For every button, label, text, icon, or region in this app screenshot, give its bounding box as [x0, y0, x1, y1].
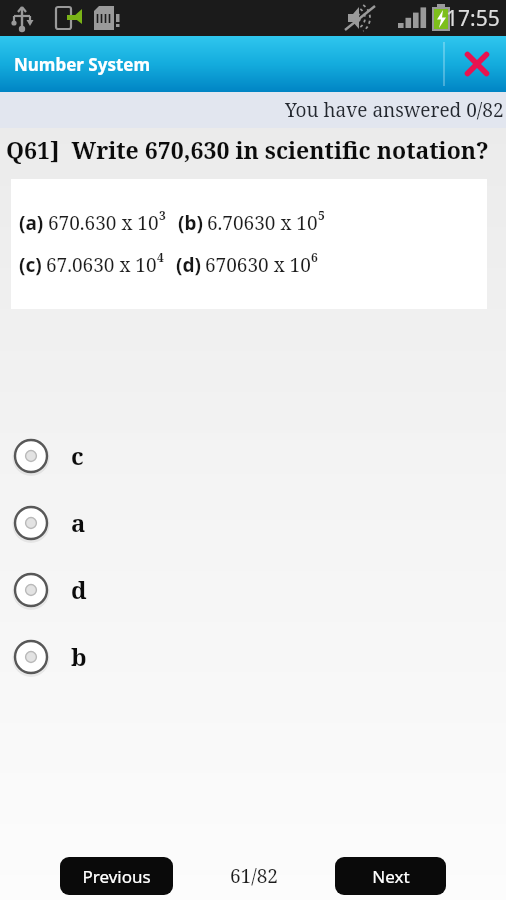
staticText: 61/82	[230, 863, 278, 889]
staticText: 4	[157, 249, 164, 265]
button[interactable]: Next	[335, 857, 446, 895]
staticText: 17:55	[446, 4, 500, 33]
staticText: You have answered 0/82	[285, 97, 504, 123]
button[interactable]: c	[0, 422, 506, 489]
staticText: 3	[159, 207, 166, 223]
staticText: b	[71, 640, 87, 673]
staticText: Previous	[82, 865, 151, 888]
staticText: 67.0630 x 10	[46, 252, 157, 278]
staticText: (c)	[19, 252, 42, 278]
staticText: Number System	[14, 53, 151, 76]
staticText: (b)	[178, 210, 203, 236]
staticText: 670630 x 10	[205, 252, 311, 278]
staticText: 670.630 x 10	[48, 210, 159, 236]
staticText: d	[71, 573, 87, 606]
staticText: Next	[372, 865, 410, 888]
staticText: 6.70630 x 10	[207, 210, 318, 236]
button[interactable]: d	[0, 556, 506, 623]
staticText: (d)	[176, 252, 201, 278]
button[interactable]: Close	[444, 36, 506, 92]
staticText: 5	[318, 207, 325, 223]
staticText: c	[71, 439, 84, 472]
button[interactable]: Previous	[60, 857, 173, 895]
staticText: (a)	[19, 210, 44, 236]
button[interactable]: a	[0, 489, 506, 556]
button[interactable]: b	[0, 623, 506, 690]
staticText: 6	[311, 249, 318, 265]
staticText: Q61] Write 670,630 in scientific notatio…	[6, 134, 494, 165]
staticText: a	[71, 506, 86, 539]
